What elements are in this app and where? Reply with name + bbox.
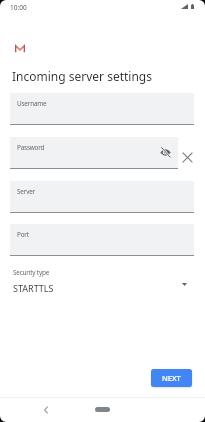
staticText: STARTTLS bbox=[13, 282, 54, 294]
button[interactable]: Security type bbox=[0, 264, 205, 298]
button[interactable]: Back bbox=[38, 402, 53, 417]
button[interactable]: Password bbox=[10, 137, 178, 169]
staticText: Server bbox=[17, 187, 36, 196]
staticText: NEXT bbox=[162, 373, 181, 383]
button[interactable]: Username bbox=[10, 93, 194, 125]
staticText: Username bbox=[17, 99, 47, 108]
button[interactable]: NEXT bbox=[151, 369, 192, 387]
button[interactable]: Clear password bbox=[181, 151, 194, 164]
button[interactable]: Home bbox=[95, 407, 110, 412]
staticText: Security type bbox=[13, 268, 50, 277]
button[interactable]: Server bbox=[10, 181, 194, 213]
staticText: Port bbox=[17, 230, 29, 239]
staticText: 10:00 bbox=[10, 3, 27, 12]
staticText: Password bbox=[17, 143, 45, 152]
button[interactable]: Show password bbox=[155, 141, 176, 164]
button[interactable]: Port bbox=[10, 224, 194, 256]
staticText: Incoming server settings bbox=[12, 68, 152, 84]
